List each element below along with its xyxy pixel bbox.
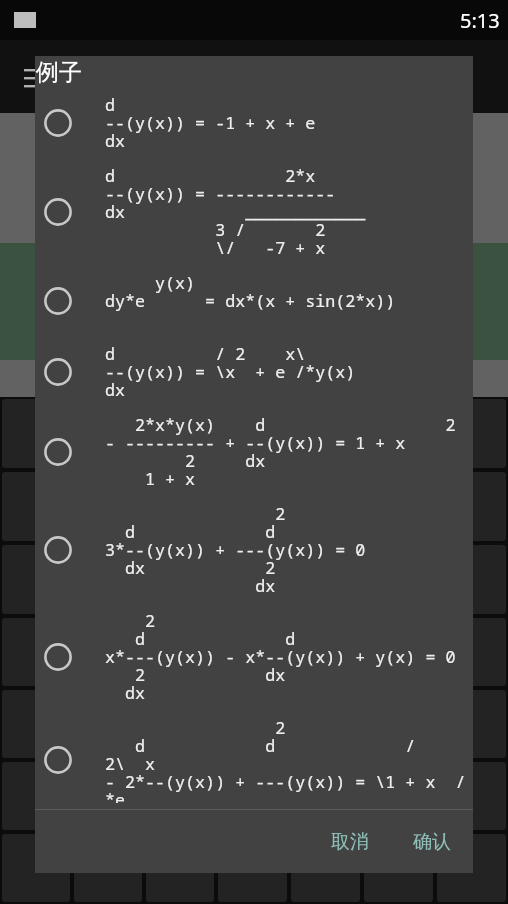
button[interactable] bbox=[74, 545, 142, 614]
staticText: 取消 bbox=[331, 830, 369, 854]
staticText: 例子 bbox=[62, 62, 108, 91]
button[interactable]: Select bbox=[35, 336, 473, 407]
button[interactable]: Select bbox=[35, 87, 473, 158]
staticText: d --(y(x)) = -1 + x + e dx bbox=[105, 93, 316, 152]
button[interactable]: Select bbox=[35, 407, 473, 496]
button[interactable] bbox=[146, 618, 214, 686]
button[interactable] bbox=[74, 834, 142, 902]
button[interactable] bbox=[74, 762, 142, 830]
button[interactable] bbox=[437, 545, 506, 614]
staticText: 2*x*y(x) d 2 - --------- + --(y(x)) = 1 … bbox=[105, 413, 456, 490]
button[interactable] bbox=[437, 399, 506, 468]
button[interactable] bbox=[2, 834, 70, 902]
button[interactable] bbox=[2, 690, 70, 758]
staticText: 例子 bbox=[36, 58, 82, 87]
button[interactable] bbox=[437, 762, 506, 830]
button[interactable] bbox=[364, 618, 433, 686]
button[interactable] bbox=[218, 834, 287, 902]
button[interactable]: Select bbox=[35, 603, 473, 710]
button[interactable] bbox=[291, 399, 360, 468]
other: Select bbox=[44, 536, 72, 564]
button[interactable]: Select bbox=[35, 265, 473, 336]
button[interactable] bbox=[437, 472, 506, 541]
button[interactable] bbox=[146, 834, 214, 902]
button[interactable] bbox=[291, 834, 360, 902]
button[interactable]: 取消 bbox=[309, 818, 391, 866]
staticText: 2 d d x*---(y(x)) - x*--(y(x)) + y(x) = … bbox=[105, 609, 456, 704]
other: Select bbox=[44, 746, 72, 774]
button[interactable] bbox=[291, 545, 360, 614]
button[interactable] bbox=[74, 399, 142, 468]
other: Menu bbox=[24, 69, 46, 85]
button[interactable] bbox=[291, 618, 360, 686]
button[interactable] bbox=[437, 690, 506, 758]
button[interactable]: Select bbox=[35, 496, 473, 603]
button[interactable]: Select bbox=[35, 158, 473, 265]
button[interactable] bbox=[146, 762, 214, 830]
button[interactable]: 确认 bbox=[391, 818, 473, 866]
button[interactable] bbox=[218, 618, 287, 686]
button[interactable] bbox=[364, 690, 433, 758]
button[interactable] bbox=[218, 472, 287, 541]
staticText: 2 d d 3*--(y(x)) + ---(y(x)) = 0 dx 2 dx bbox=[105, 502, 366, 597]
other: Select bbox=[44, 287, 72, 315]
button[interactable] bbox=[218, 690, 287, 758]
button[interactable] bbox=[437, 618, 506, 686]
staticText: 2 d d / 2\ x - 2*--(y(x)) + ---(y(x)) = … bbox=[105, 716, 473, 803]
button[interactable] bbox=[2, 762, 70, 830]
other: Select bbox=[44, 643, 72, 671]
staticText: 确认 bbox=[413, 830, 451, 854]
button[interactable] bbox=[146, 545, 214, 614]
button[interactable] bbox=[291, 762, 360, 830]
button[interactable] bbox=[74, 690, 142, 758]
button[interactable] bbox=[364, 762, 433, 830]
button[interactable] bbox=[218, 762, 287, 830]
staticText: d 2*x --(y(x)) = ------------ dx _______… bbox=[105, 164, 366, 259]
other: Select bbox=[44, 109, 72, 137]
button[interactable] bbox=[74, 472, 142, 541]
staticText: d / 2 x\ --(y(x)) = \x + e /*y(x) dx bbox=[105, 342, 356, 401]
button[interactable] bbox=[364, 834, 433, 902]
staticText: 5:13 bbox=[460, 7, 500, 34]
button[interactable] bbox=[74, 618, 142, 686]
button[interactable] bbox=[218, 399, 287, 468]
button[interactable] bbox=[2, 545, 70, 614]
button[interactable] bbox=[2, 472, 70, 541]
button[interactable] bbox=[218, 545, 287, 614]
button[interactable] bbox=[146, 472, 214, 541]
button[interactable] bbox=[364, 399, 433, 468]
other: Select bbox=[44, 358, 72, 386]
other: Select bbox=[44, 438, 72, 466]
button[interactable]: Select bbox=[35, 710, 473, 809]
button[interactable] bbox=[2, 399, 70, 468]
button[interactable] bbox=[437, 834, 506, 902]
other: Select bbox=[44, 198, 72, 226]
staticText: y(x) dy*e = dx*(x + sin(2*x)) bbox=[105, 271, 396, 330]
button[interactable] bbox=[146, 399, 214, 468]
button[interactable] bbox=[2, 618, 70, 686]
